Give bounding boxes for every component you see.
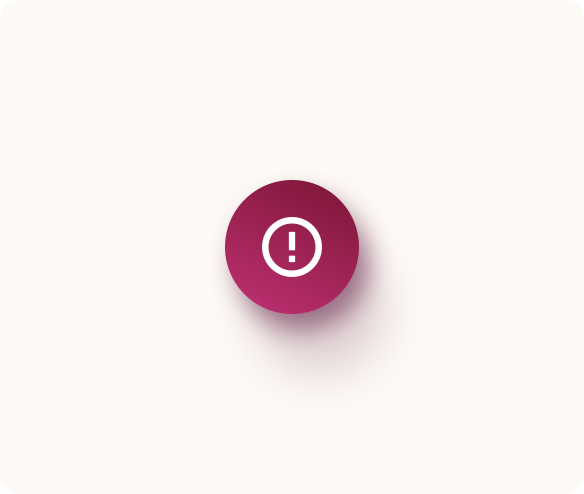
- button[interactable]: Report a problem: [225, 180, 359, 314]
